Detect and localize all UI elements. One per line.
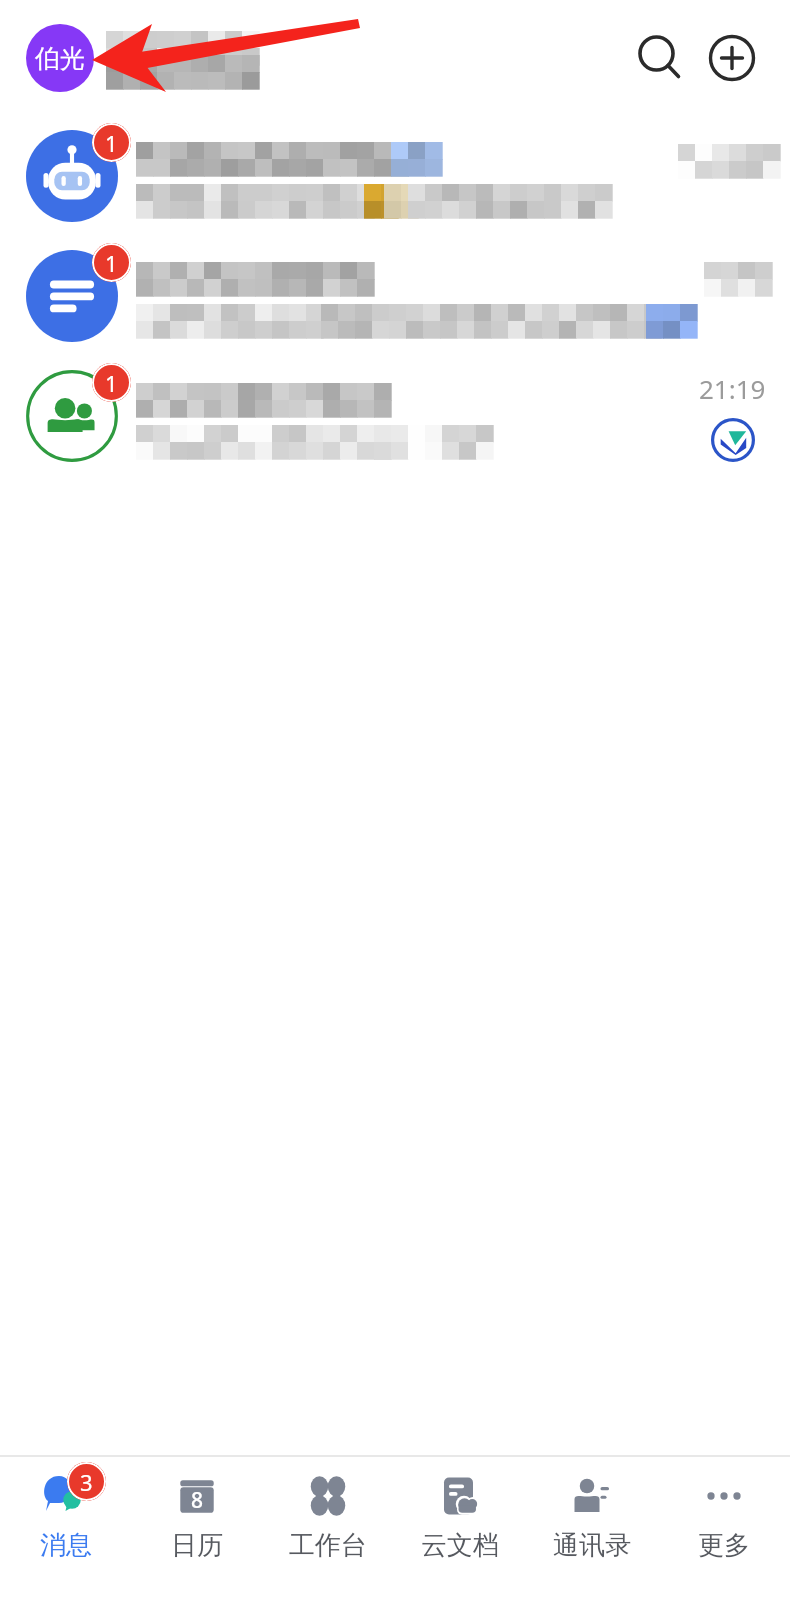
button[interactable]: Add bbox=[700, 26, 764, 90]
button[interactable]: 1 bbox=[0, 116, 790, 236]
staticText: 工作台 bbox=[289, 1529, 367, 1562]
staticText: 通讯录 bbox=[553, 1529, 631, 1562]
staticText: 伯光 bbox=[35, 43, 85, 74]
staticText: 1 bbox=[105, 368, 118, 398]
staticText: 日历 bbox=[171, 1529, 223, 1562]
staticText: 云文档 bbox=[421, 1529, 499, 1562]
button[interactable]: Search bbox=[628, 26, 692, 90]
button[interactable]: 更多 bbox=[658, 1457, 790, 1600]
button[interactable]: 通讯录 bbox=[526, 1457, 658, 1600]
staticText: 1 bbox=[105, 128, 118, 158]
button[interactable]: 8 bbox=[131, 1457, 262, 1600]
button[interactable]: 1 bbox=[0, 356, 790, 476]
staticText: 1 bbox=[105, 248, 118, 278]
button[interactable]: 1 bbox=[0, 236, 790, 356]
staticText: 21:19 bbox=[699, 371, 766, 406]
button[interactable]: 3 bbox=[0, 1457, 131, 1600]
button[interactable]: 云文档 bbox=[394, 1457, 526, 1600]
staticText: 3 bbox=[80, 1467, 93, 1497]
staticText: 8 bbox=[191, 1486, 204, 1515]
staticText: 更多 bbox=[698, 1529, 750, 1562]
button[interactable]: 工作台 bbox=[262, 1457, 394, 1600]
button[interactable]: Profile bbox=[26, 24, 94, 92]
staticText: 消息 bbox=[40, 1529, 92, 1562]
